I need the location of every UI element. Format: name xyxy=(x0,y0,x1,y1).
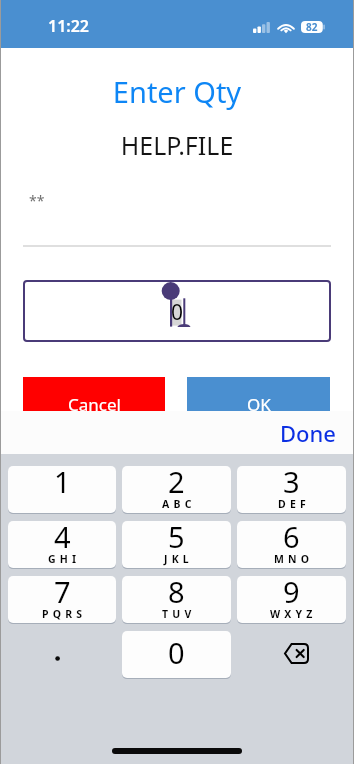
button[interactable]: OK xyxy=(187,377,330,432)
staticText: ** xyxy=(29,191,45,210)
staticText: 5 xyxy=(168,521,185,556)
button[interactable]: 4 xyxy=(8,521,116,568)
staticText: 7 xyxy=(54,576,71,611)
button[interactable]: 1 xyxy=(8,466,116,513)
button[interactable]: 5 xyxy=(122,521,231,568)
staticText: Cancel xyxy=(68,393,121,416)
button[interactable]: 7 xyxy=(8,576,116,623)
staticText: 82 xyxy=(306,20,318,34)
staticText: 0 xyxy=(171,298,184,327)
button[interactable]: 3 xyxy=(237,466,346,513)
button[interactable]: Cancel xyxy=(23,377,165,432)
staticText: 8 xyxy=(168,576,185,611)
staticText: JKL xyxy=(164,552,193,566)
staticText: TUV xyxy=(162,607,196,621)
staticText: 6 xyxy=(283,521,300,556)
button[interactable]: Done xyxy=(268,411,354,454)
staticText: HELP.FILE xyxy=(0,128,354,162)
staticText: WXYZ xyxy=(270,607,317,621)
button[interactable]: Backspace xyxy=(237,631,346,678)
staticText: Done xyxy=(280,418,336,447)
staticText: 4 xyxy=(54,521,71,556)
button[interactable]: 0 xyxy=(23,280,331,342)
staticText: DEF xyxy=(278,497,310,511)
button[interactable]: 8 xyxy=(122,576,231,623)
staticText: 2 xyxy=(168,466,185,501)
staticText: GHI xyxy=(48,552,81,566)
staticText: 1 xyxy=(54,466,71,501)
staticText: 0 xyxy=(168,633,185,672)
button[interactable]: 9 xyxy=(237,576,346,623)
staticText: 9 xyxy=(283,576,300,611)
staticText: ABC xyxy=(162,497,196,511)
staticText: PQRS xyxy=(42,607,87,621)
staticText: MNO xyxy=(274,552,314,566)
staticText: 11:22 xyxy=(48,15,90,37)
button[interactable]: Decimal point xyxy=(8,631,116,678)
button[interactable]: 6 xyxy=(237,521,346,568)
button[interactable]: 0 xyxy=(122,631,231,678)
staticText: OK xyxy=(247,393,271,416)
button[interactable]: 2 xyxy=(122,466,231,513)
staticText: Enter Qty xyxy=(0,72,354,111)
staticText: 3 xyxy=(283,466,300,501)
